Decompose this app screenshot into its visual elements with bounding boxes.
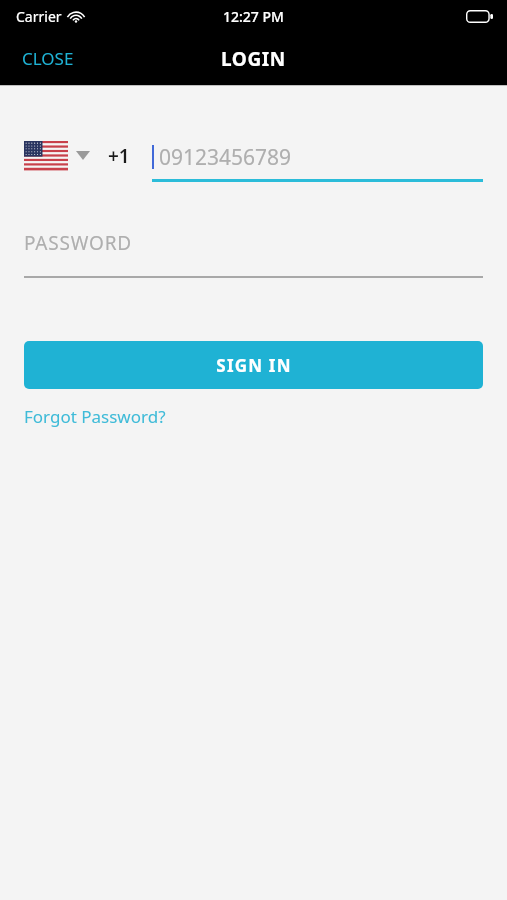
button[interactable]: CLOSE	[0, 35, 96, 82]
button[interactable]: SIGN IN	[24, 341, 483, 389]
staticText: Carrier	[16, 7, 62, 26]
staticText: CLOSE	[22, 47, 74, 70]
button[interactable]: PASSWORD	[24, 225, 483, 261]
staticText: +1	[108, 143, 130, 169]
staticText: 12:27 PM	[223, 7, 284, 26]
staticText: SIGN IN	[216, 354, 292, 377]
button[interactable]: Select country code	[24, 135, 90, 170]
staticText: PASSWORD	[24, 230, 132, 256]
button[interactable]: 09123456789	[152, 135, 483, 179]
staticText: LOGIN	[221, 46, 286, 72]
button[interactable]: Forgot Password?	[24, 401, 166, 432]
staticText: Forgot Password?	[24, 405, 166, 428]
staticText: 09123456789	[159, 143, 292, 172]
